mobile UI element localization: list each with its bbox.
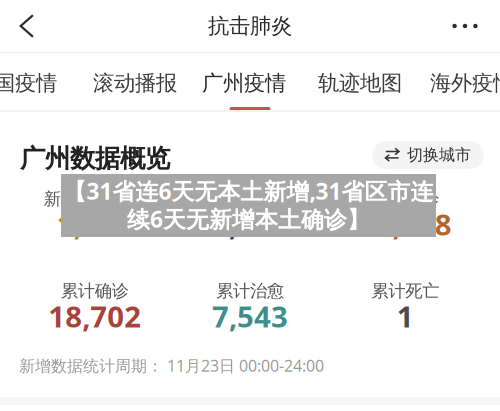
staticText: 11,158 bbox=[359, 204, 452, 243]
staticText: 现有确诊 bbox=[371, 188, 439, 210]
button[interactable]: 广州疫情 bbox=[203, 53, 285, 111]
staticText: 续6天无新增本土确诊】 bbox=[127, 204, 370, 234]
button[interactable]: 海外疫情 bbox=[431, 53, 500, 111]
staticText: 海外疫情 bbox=[430, 70, 500, 96]
staticText: 滚动播报 bbox=[93, 70, 177, 96]
button[interactable]: 切换城市 bbox=[372, 141, 484, 169]
staticText: 1 bbox=[397, 296, 414, 335]
staticText: 广州数据概览 bbox=[20, 143, 170, 174]
button[interactable]: 轨迹地图 bbox=[319, 53, 401, 111]
staticText: 切换城市 bbox=[407, 145, 471, 165]
staticText: 新增数据统计周期： 11月23日 00:00-24:00 bbox=[19, 355, 324, 376]
staticText: 【31省连6天无本土新增,31省区市连 bbox=[63, 176, 433, 206]
button[interactable]: More options bbox=[441, 0, 489, 52]
staticText: 累计确诊 bbox=[61, 280, 129, 302]
staticText: 抗击肺炎 bbox=[208, 13, 292, 39]
staticText: 1,645 bbox=[57, 204, 133, 243]
staticText: 7,192 bbox=[212, 204, 288, 243]
button[interactable]: Back bbox=[3, 0, 51, 52]
staticText: 全国疫情 bbox=[0, 70, 57, 96]
staticText: 新增本土确诊 bbox=[44, 188, 146, 210]
staticText: 广州疫情 bbox=[202, 70, 286, 96]
staticText: 累计治愈 bbox=[216, 280, 284, 302]
button[interactable]: 滚动播报 bbox=[94, 53, 176, 111]
staticText: 18,702 bbox=[48, 296, 141, 335]
staticText: 轨迹地图 bbox=[318, 70, 402, 96]
staticText: 累计死亡 bbox=[371, 280, 439, 302]
button[interactable]: 全国疫情 bbox=[0, 53, 56, 111]
staticText: 新增本土无症状 bbox=[190, 188, 309, 210]
staticText: 7,543 bbox=[212, 296, 288, 335]
